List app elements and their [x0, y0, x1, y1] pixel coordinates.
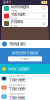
staticText: Search [20, 57, 30, 60]
staticText: Sponsored [9, 92, 25, 96]
button[interactable]: Sponsored [0, 83, 50, 92]
button[interactable]: Messages [2, 5, 48, 12]
staticText: Telegram [9, 42, 26, 46]
staticText: now [11, 9, 17, 12]
staticText: 9:41 [3, 0, 11, 4]
staticText: Title here [9, 87, 25, 91]
button[interactable]: Sponsored [0, 74, 50, 83]
button[interactable]: New Update [0, 64, 50, 74]
staticText: Welcome back! [11, 51, 38, 55]
staticText: Messages [11, 4, 29, 9]
staticText: YouTube [11, 12, 25, 17]
staticText: New Update [8, 67, 29, 71]
staticText: now [11, 17, 17, 20]
staticText: now [11, 24, 17, 27]
button[interactable]: Search [8, 56, 42, 61]
staticText: Sponsored [9, 83, 25, 87]
button[interactable]: Photos [2, 20, 48, 27]
staticText: Title here [9, 96, 25, 100]
staticText: Photos [11, 19, 23, 24]
button[interactable]: Sponsored [0, 92, 50, 100]
button[interactable]: YouTube [2, 12, 48, 19]
staticText: Title here [9, 78, 25, 82]
staticText: Sponsored [9, 74, 25, 78]
staticText: ▮▮▮ [41, 0, 47, 4]
